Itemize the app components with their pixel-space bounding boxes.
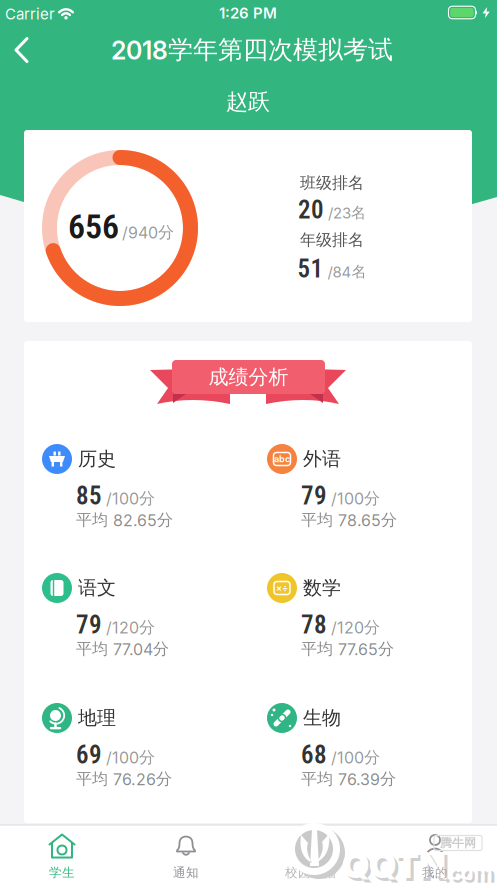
staticText: ×÷ (276, 583, 288, 593)
staticText: /120分 (106, 617, 155, 637)
staticText: 历史 (78, 447, 116, 471)
staticText: 平均 82.65分 (76, 510, 173, 530)
staticText: 656 (68, 207, 119, 247)
staticText: 地理 (78, 706, 116, 730)
staticText: /940分 (122, 222, 174, 243)
staticText: 赵跃 (226, 88, 270, 116)
staticText: 班级排名 (300, 173, 364, 193)
staticText: /100分 (331, 747, 380, 767)
button[interactable]: 通知 (141, 826, 231, 878)
staticText: 69 (76, 740, 102, 770)
staticText: 2018学年第四次模拟考试 (111, 34, 393, 66)
staticText: 85 (76, 481, 102, 511)
staticText: 平均 78.65分 (301, 510, 397, 530)
staticText: 生物 (303, 706, 341, 730)
staticText: 通知 (173, 865, 199, 880)
staticText: 腾牛网 (440, 835, 476, 850)
button[interactable]: Back (6, 28, 38, 71)
staticText: /23名 (328, 203, 366, 222)
staticText: /100分 (106, 747, 155, 767)
staticText: /100分 (331, 488, 380, 508)
staticText: 校园直播 (285, 865, 337, 880)
staticText: 51 (297, 254, 323, 284)
staticText: 我的 (422, 865, 448, 880)
staticText: 79 (301, 481, 327, 511)
staticText: 年级排名 (300, 230, 364, 250)
staticText: 78 (301, 610, 327, 640)
staticText: 成绩分析 (208, 364, 288, 390)
staticText: /84名 (327, 262, 366, 281)
button[interactable]: 学生 (17, 826, 107, 878)
staticText: abc (274, 454, 290, 464)
staticText: QQTN (345, 846, 449, 883)
staticText: 20 (298, 195, 324, 225)
staticText: 我的 (422, 865, 448, 880)
staticText: 数学 (303, 576, 341, 600)
button[interactable]: 校园直播 (266, 826, 356, 878)
staticText: /100分 (106, 488, 155, 508)
button[interactable]: 我的 (390, 826, 480, 878)
staticText: 平均 77.04分 (76, 639, 169, 659)
staticText: 平均 76.26分 (76, 769, 172, 789)
staticText: QQTN (342, 843, 446, 883)
staticText: 外语 (303, 447, 341, 471)
staticText: /120分 (331, 617, 380, 637)
staticText: 学生 (49, 865, 75, 880)
staticText: 1:26 PM (219, 4, 277, 22)
staticText: 平均 77.65分 (301, 639, 394, 659)
staticText: .com (441, 859, 492, 883)
staticText: 语文 (78, 576, 116, 600)
staticText: Carrier (5, 5, 55, 23)
staticText: 68 (301, 740, 327, 770)
staticText: 79 (76, 610, 102, 640)
staticText: .com (444, 862, 495, 883)
staticText: 平均 76.39分 (301, 769, 396, 789)
